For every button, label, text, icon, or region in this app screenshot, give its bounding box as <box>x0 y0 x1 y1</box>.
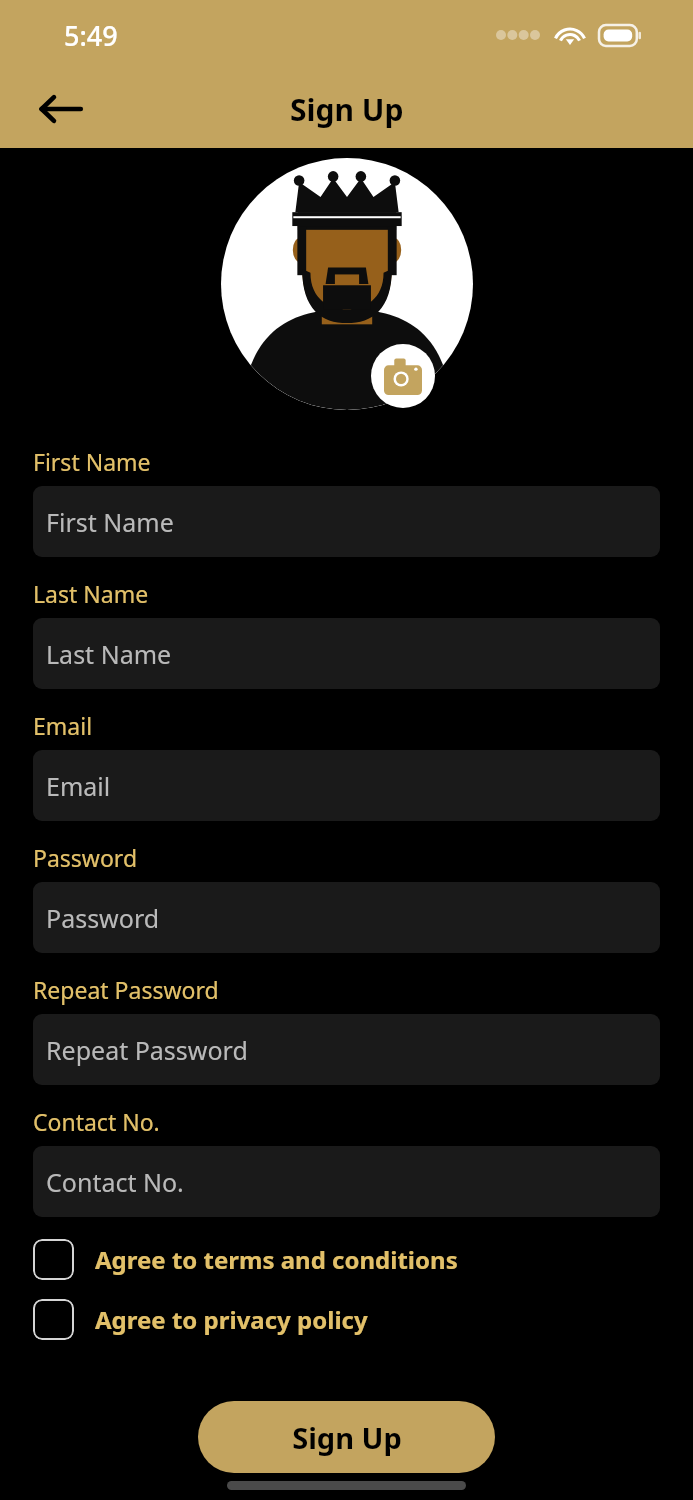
staticText: Last Name <box>33 578 149 609</box>
staticText: Repeat Password <box>46 1033 248 1067</box>
button[interactable]: Sign Up <box>198 1401 495 1473</box>
button[interactable]: Back <box>28 76 94 142</box>
staticText: Password <box>46 901 160 935</box>
staticText: Contact No. <box>46 1165 184 1199</box>
staticText: First Name <box>46 505 174 539</box>
button[interactable]: Agree to privacy policy <box>33 1299 660 1340</box>
button[interactable]: Contact No. <box>33 1146 660 1217</box>
staticText: Contact No. <box>33 1106 160 1137</box>
button[interactable]: Last Name <box>33 618 660 689</box>
button[interactable]: Password <box>33 882 660 953</box>
button[interactable]: Agree to terms and conditions <box>33 1239 660 1280</box>
staticText: 5:49 <box>64 17 118 54</box>
staticText: Sign Up <box>292 1418 402 1457</box>
staticText: Email <box>46 769 111 803</box>
staticText: Agree to privacy policy <box>95 1303 368 1336</box>
staticText: Password <box>33 842 138 873</box>
staticText: Sign Up <box>290 89 404 130</box>
staticText: First Name <box>33 446 151 477</box>
button[interactable]: Repeat Password <box>33 1014 660 1085</box>
button[interactable]: Profile photo <box>221 158 473 410</box>
staticText: Agree to terms and conditions <box>95 1243 458 1276</box>
button[interactable]: First Name <box>33 486 660 557</box>
staticText: Email <box>33 710 93 741</box>
staticText: Repeat Password <box>33 974 219 1005</box>
button[interactable]: Change photo <box>371 344 435 408</box>
button[interactable]: Email <box>33 750 660 821</box>
staticText: Last Name <box>46 637 172 671</box>
